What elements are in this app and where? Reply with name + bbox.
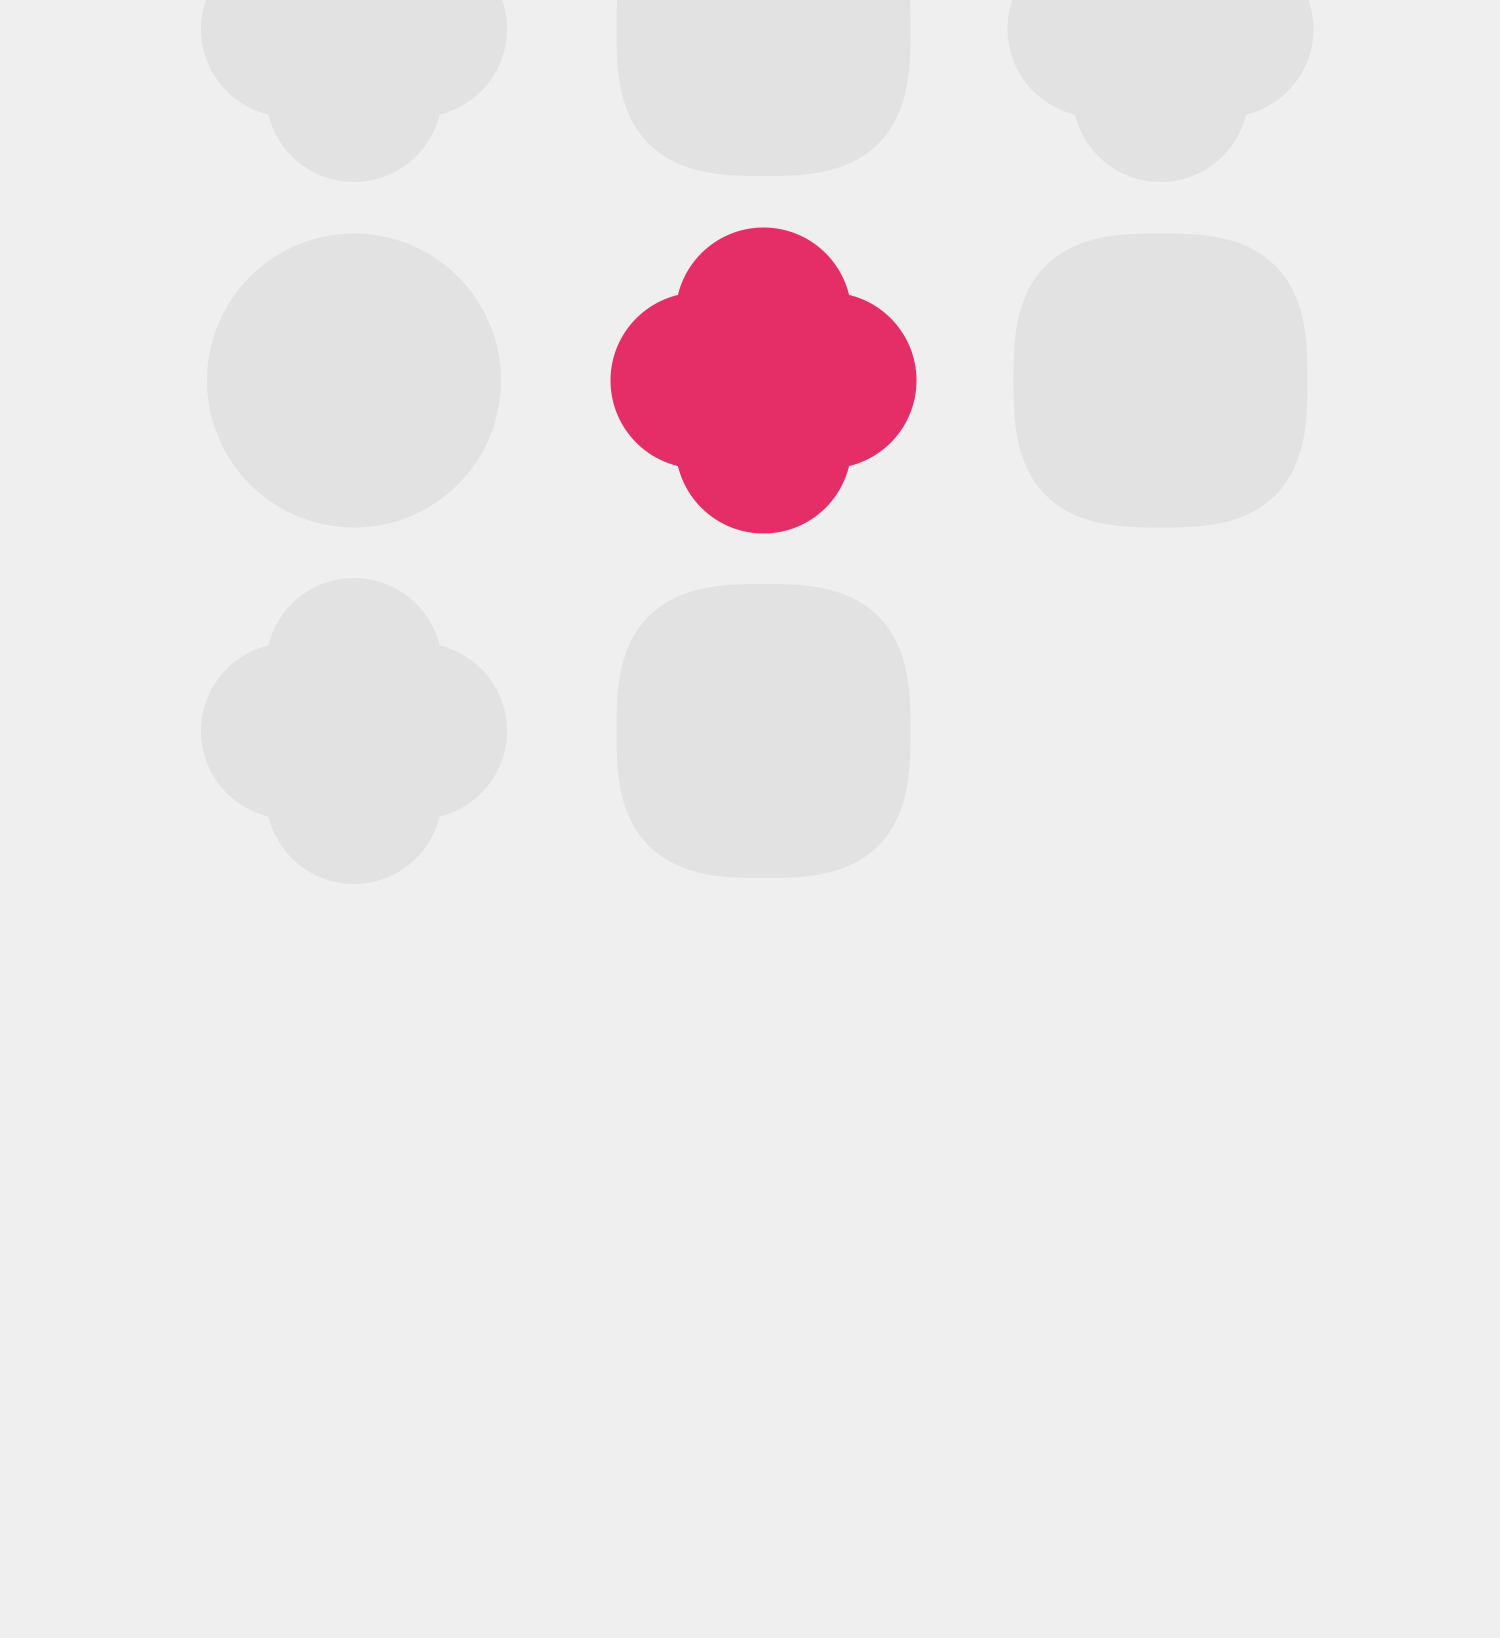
button[interactable]: Clover shape [201, 578, 507, 884]
button[interactable]: Clover shape [201, 0, 507, 182]
button[interactable]: Rounded square shape [1007, 227, 1313, 533]
button[interactable]: Circle shape [201, 227, 507, 533]
button[interactable]: Clover shape [1007, 0, 1313, 182]
button[interactable]: Clover shape, selected [610, 227, 916, 533]
button[interactable]: Rounded square shape [610, 0, 916, 182]
button[interactable]: Rounded square shape [610, 578, 916, 884]
